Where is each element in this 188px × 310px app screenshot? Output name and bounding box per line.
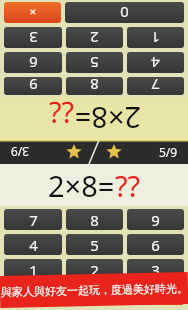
button[interactable]: 2: [66, 259, 123, 280]
staticText: 7: [151, 77, 160, 95]
staticText: 9: [151, 210, 160, 230]
staticText: 與家人與好友一起玩，度過美好時光。: [1, 281, 188, 299]
button[interactable]: 4: [4, 234, 62, 255]
button[interactable]: 8: [66, 77, 123, 95]
button[interactable]: 9: [127, 209, 184, 230]
staticText: 5: [90, 53, 99, 73]
staticText: 2: [90, 28, 99, 48]
button[interactable]: 5: [66, 52, 123, 73]
staticText: 3: [29, 28, 38, 48]
button[interactable]: 5: [66, 234, 123, 255]
button[interactable]: 與家人與好友一起玩，度過美好時光。: [0, 272, 188, 308]
staticText: 2×8=: [74, 99, 141, 138]
button[interactable]: 1: [127, 27, 184, 48]
staticText: 4: [151, 53, 160, 73]
staticText: 8: [90, 77, 99, 95]
button[interactable]: 6: [127, 234, 184, 255]
staticText: ??: [115, 166, 141, 205]
button[interactable]: 9: [4, 77, 62, 95]
button[interactable]: 6: [4, 52, 62, 73]
staticText: 5: [90, 235, 99, 255]
staticText: 1: [151, 28, 160, 48]
button[interactable]: Close: [4, 2, 61, 23]
staticText: 9: [29, 77, 38, 95]
staticText: 6: [151, 235, 160, 255]
staticText: 2×8=: [48, 166, 115, 205]
staticText: ×: [152, 287, 159, 302]
staticText: 3: [151, 260, 160, 280]
staticText: 8: [90, 210, 99, 230]
button[interactable]: 0: [65, 2, 184, 23]
staticText: 6: [29, 53, 38, 73]
button[interactable]: 7: [127, 77, 184, 95]
staticText: 3/9: [10, 144, 29, 160]
button[interactable]: 7: [4, 209, 62, 230]
staticText: 0: [59, 285, 68, 305]
button[interactable]: 0: [4, 284, 123, 305]
staticText: 7: [29, 210, 38, 230]
staticText: 0: [120, 3, 129, 23]
staticText: 2: [90, 260, 99, 280]
staticText: ×: [29, 5, 36, 20]
button[interactable]: 3: [4, 27, 62, 48]
button[interactable]: 1: [4, 259, 62, 280]
staticText: 4: [29, 235, 38, 255]
button[interactable]: Close: [127, 284, 184, 305]
staticText: 1: [29, 260, 38, 280]
button[interactable]: 8: [66, 209, 123, 230]
staticText: 5/9: [159, 144, 178, 160]
button[interactable]: 3: [127, 259, 184, 280]
staticText: ¿¿: [48, 99, 74, 138]
button[interactable]: 2: [66, 27, 123, 48]
button[interactable]: 4: [127, 52, 184, 73]
